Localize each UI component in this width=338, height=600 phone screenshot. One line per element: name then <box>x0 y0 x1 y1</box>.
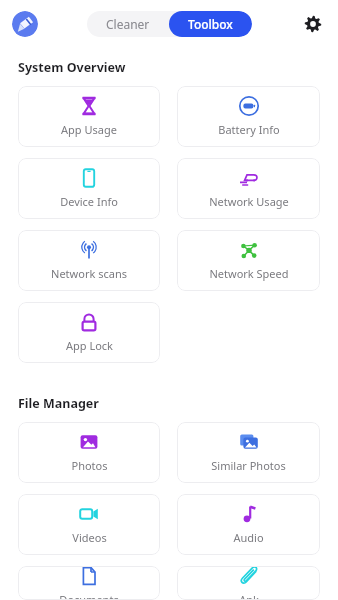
staticText: File Manager <box>18 395 99 412</box>
button[interactable]: Documents <box>18 566 160 600</box>
staticText: App Usage <box>61 122 117 137</box>
staticText: Apk <box>239 592 259 600</box>
button[interactable]: Cleaner <box>87 11 169 37</box>
staticText: Device Info <box>60 194 118 209</box>
button[interactable]: Toolbox <box>169 11 252 37</box>
staticText: Documents <box>59 592 119 600</box>
button[interactable]: Videos <box>18 494 160 555</box>
button[interactable]: Network Usage <box>177 158 320 219</box>
button[interactable]: Battery Info <box>177 86 320 147</box>
button[interactable]: Similar Photos <box>177 422 320 483</box>
staticText: Cleaner <box>106 16 150 32</box>
button[interactable]: Photos <box>18 422 160 483</box>
button[interactable]: App Lock <box>18 302 160 363</box>
button[interactable]: Audio <box>177 494 320 555</box>
staticText: Videos <box>72 530 107 545</box>
button[interactable]: App logo <box>12 11 38 37</box>
staticText: Network Speed <box>209 266 289 281</box>
staticText: Network scans <box>51 266 127 281</box>
staticText: Photos <box>71 458 108 473</box>
button[interactable]: Network Speed <box>177 230 320 291</box>
staticText: Battery Info <box>218 122 280 137</box>
staticText: Audio <box>233 530 264 545</box>
button[interactable]: Device Info <box>18 158 160 219</box>
staticText: Toolbox <box>188 16 233 32</box>
button[interactable]: Settings <box>300 11 326 37</box>
button[interactable]: App Usage <box>18 86 160 147</box>
button[interactable]: Apk <box>177 566 320 600</box>
staticText: Similar Photos <box>211 458 286 473</box>
staticText: App Lock <box>66 338 113 353</box>
staticText: Network Usage <box>209 194 289 209</box>
staticText: System Overview <box>18 59 126 76</box>
button[interactable]: Network scans <box>18 230 160 291</box>
